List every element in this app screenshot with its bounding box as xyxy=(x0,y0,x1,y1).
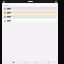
button[interactable] xyxy=(3,19,57,22)
button[interactable] xyxy=(3,4,57,6)
button[interactable]: Home xyxy=(11,61,14,64)
button[interactable]: Saved xyxy=(34,61,37,64)
button[interactable] xyxy=(3,7,57,10)
button[interactable] xyxy=(3,15,57,18)
button[interactable]: Search xyxy=(23,61,26,64)
button[interactable] xyxy=(3,11,57,14)
button[interactable]: Settings xyxy=(46,61,49,64)
